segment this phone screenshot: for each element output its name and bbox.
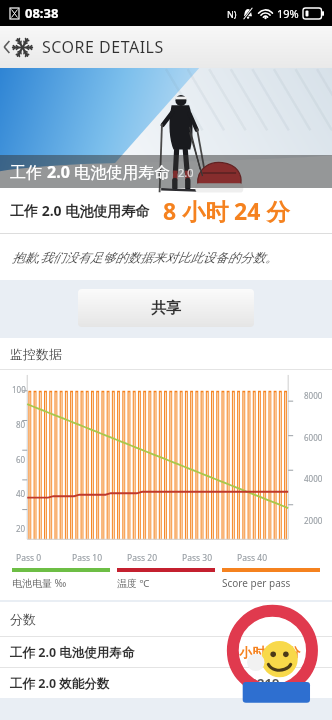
staticText: Pass 30 [182, 552, 237, 564]
staticText: N) [227, 8, 237, 20]
staticText: 温度 ℃ [117, 576, 150, 590]
staticText: Pass 20 [127, 552, 182, 564]
staticText: Pass 10 [72, 552, 127, 564]
staticText: Pass 40 [237, 552, 292, 564]
button[interactable]: 工作 2.0 电池使用寿命 [0, 637, 332, 667]
staticText: 共享 [151, 299, 181, 318]
staticText: 工作 2.0 效能分数 [10, 675, 197, 692]
staticText: 4000 [304, 473, 323, 484]
staticText: 8 小时 24 分 [163, 195, 290, 226]
staticText: 2.0 [47, 161, 70, 183]
staticText: 80 [16, 419, 26, 430]
staticText: 抱歉,我们没有足够的数据来对比此设备的分数。 [12, 249, 278, 266]
staticText: 工作 2.0 电池使用寿命 [10, 644, 197, 661]
staticText: Score per pass [222, 576, 291, 590]
button[interactable]: Back to score details [0, 32, 174, 62]
staticText: 监控数据 [10, 346, 62, 362]
staticText: 8000 [304, 390, 323, 401]
staticText: 6000 [304, 432, 323, 443]
staticText: 08:38 [25, 4, 59, 22]
staticText: SCORE DETAILS [42, 36, 164, 58]
staticText: 2000 [304, 515, 323, 526]
staticText: 电池电量 ‰ [12, 576, 67, 590]
staticText: 工作 [10, 161, 47, 183]
staticText: 8 小时 24 分 [197, 643, 332, 661]
staticText: Pass 0 [16, 552, 72, 564]
staticText: 2.0 [178, 165, 194, 180]
button[interactable]: 工作 2.0 效能分数 [0, 668, 332, 698]
staticText: 20 [16, 523, 26, 534]
staticText: 电池使用寿命 [70, 161, 171, 183]
staticText: 19% [277, 6, 299, 21]
staticText: 8219 [197, 674, 332, 692]
staticText: 60 [16, 454, 26, 465]
staticText: 分数 [10, 611, 36, 627]
staticText: 100 [12, 384, 26, 395]
staticText: 40 [16, 488, 26, 499]
button[interactable]: 共享 [78, 289, 254, 327]
staticText: 工作 2.0 电池使用寿命 [10, 201, 150, 220]
